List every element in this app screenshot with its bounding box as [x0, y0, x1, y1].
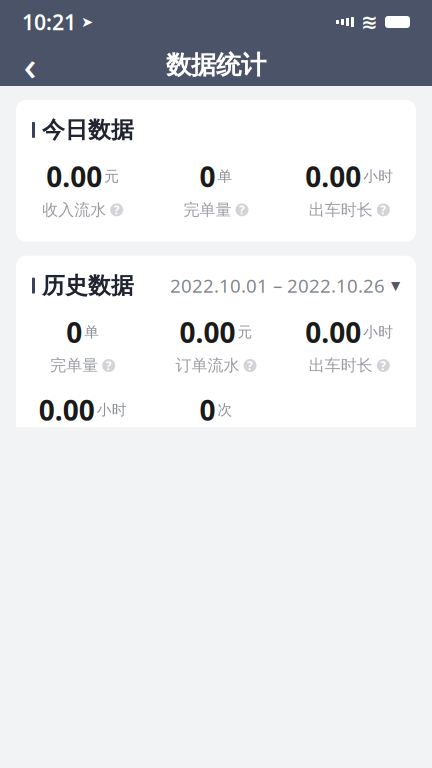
staticText: 0.00	[39, 391, 95, 429]
staticText: 完单量	[50, 356, 98, 375]
staticText: 单	[217, 167, 232, 185]
staticText: 出车时长	[309, 356, 373, 375]
staticText: 0.00	[179, 313, 235, 351]
staticText: ➤	[76, 14, 93, 30]
staticText: 0.00	[46, 158, 102, 195]
staticText: 2022.10.01 – 2022.10.26	[170, 273, 385, 298]
staticText: ?	[247, 358, 253, 373]
staticText: 10:21	[22, 8, 76, 36]
staticText: 元	[104, 167, 119, 185]
staticText: ‹	[23, 38, 36, 91]
staticText: 出车时长	[309, 200, 373, 220]
staticText: ?	[380, 358, 386, 373]
staticText: ▼	[391, 279, 400, 292]
staticText: ?	[380, 202, 386, 218]
staticText: ?	[106, 358, 112, 373]
staticText: 0.00	[305, 313, 361, 351]
staticText: 元	[237, 323, 252, 341]
staticText: 0	[199, 391, 215, 429]
staticText: 小时	[97, 401, 127, 419]
staticText: 0	[66, 313, 82, 351]
button[interactable]: 返回	[8, 44, 52, 86]
staticText: 0.00	[305, 158, 361, 195]
staticText: 今日数据	[42, 116, 134, 144]
staticText: ≋	[361, 11, 378, 33]
staticText: 小时	[363, 167, 393, 185]
staticText: ?	[114, 202, 120, 218]
staticText: 次	[217, 401, 232, 419]
staticText: ?	[239, 202, 245, 218]
staticText: 完单量	[183, 200, 231, 220]
staticText: 小时	[363, 323, 393, 341]
staticText: 收入流水	[42, 200, 106, 220]
staticText: 0	[199, 158, 215, 195]
staticText: 历史数据	[42, 272, 134, 299]
staticText: 订单流水	[175, 356, 239, 375]
staticText: 数据统计	[166, 49, 266, 80]
button[interactable]: 2022.10.01 – 2022.10.26	[170, 273, 400, 298]
staticText: 单	[84, 323, 99, 341]
